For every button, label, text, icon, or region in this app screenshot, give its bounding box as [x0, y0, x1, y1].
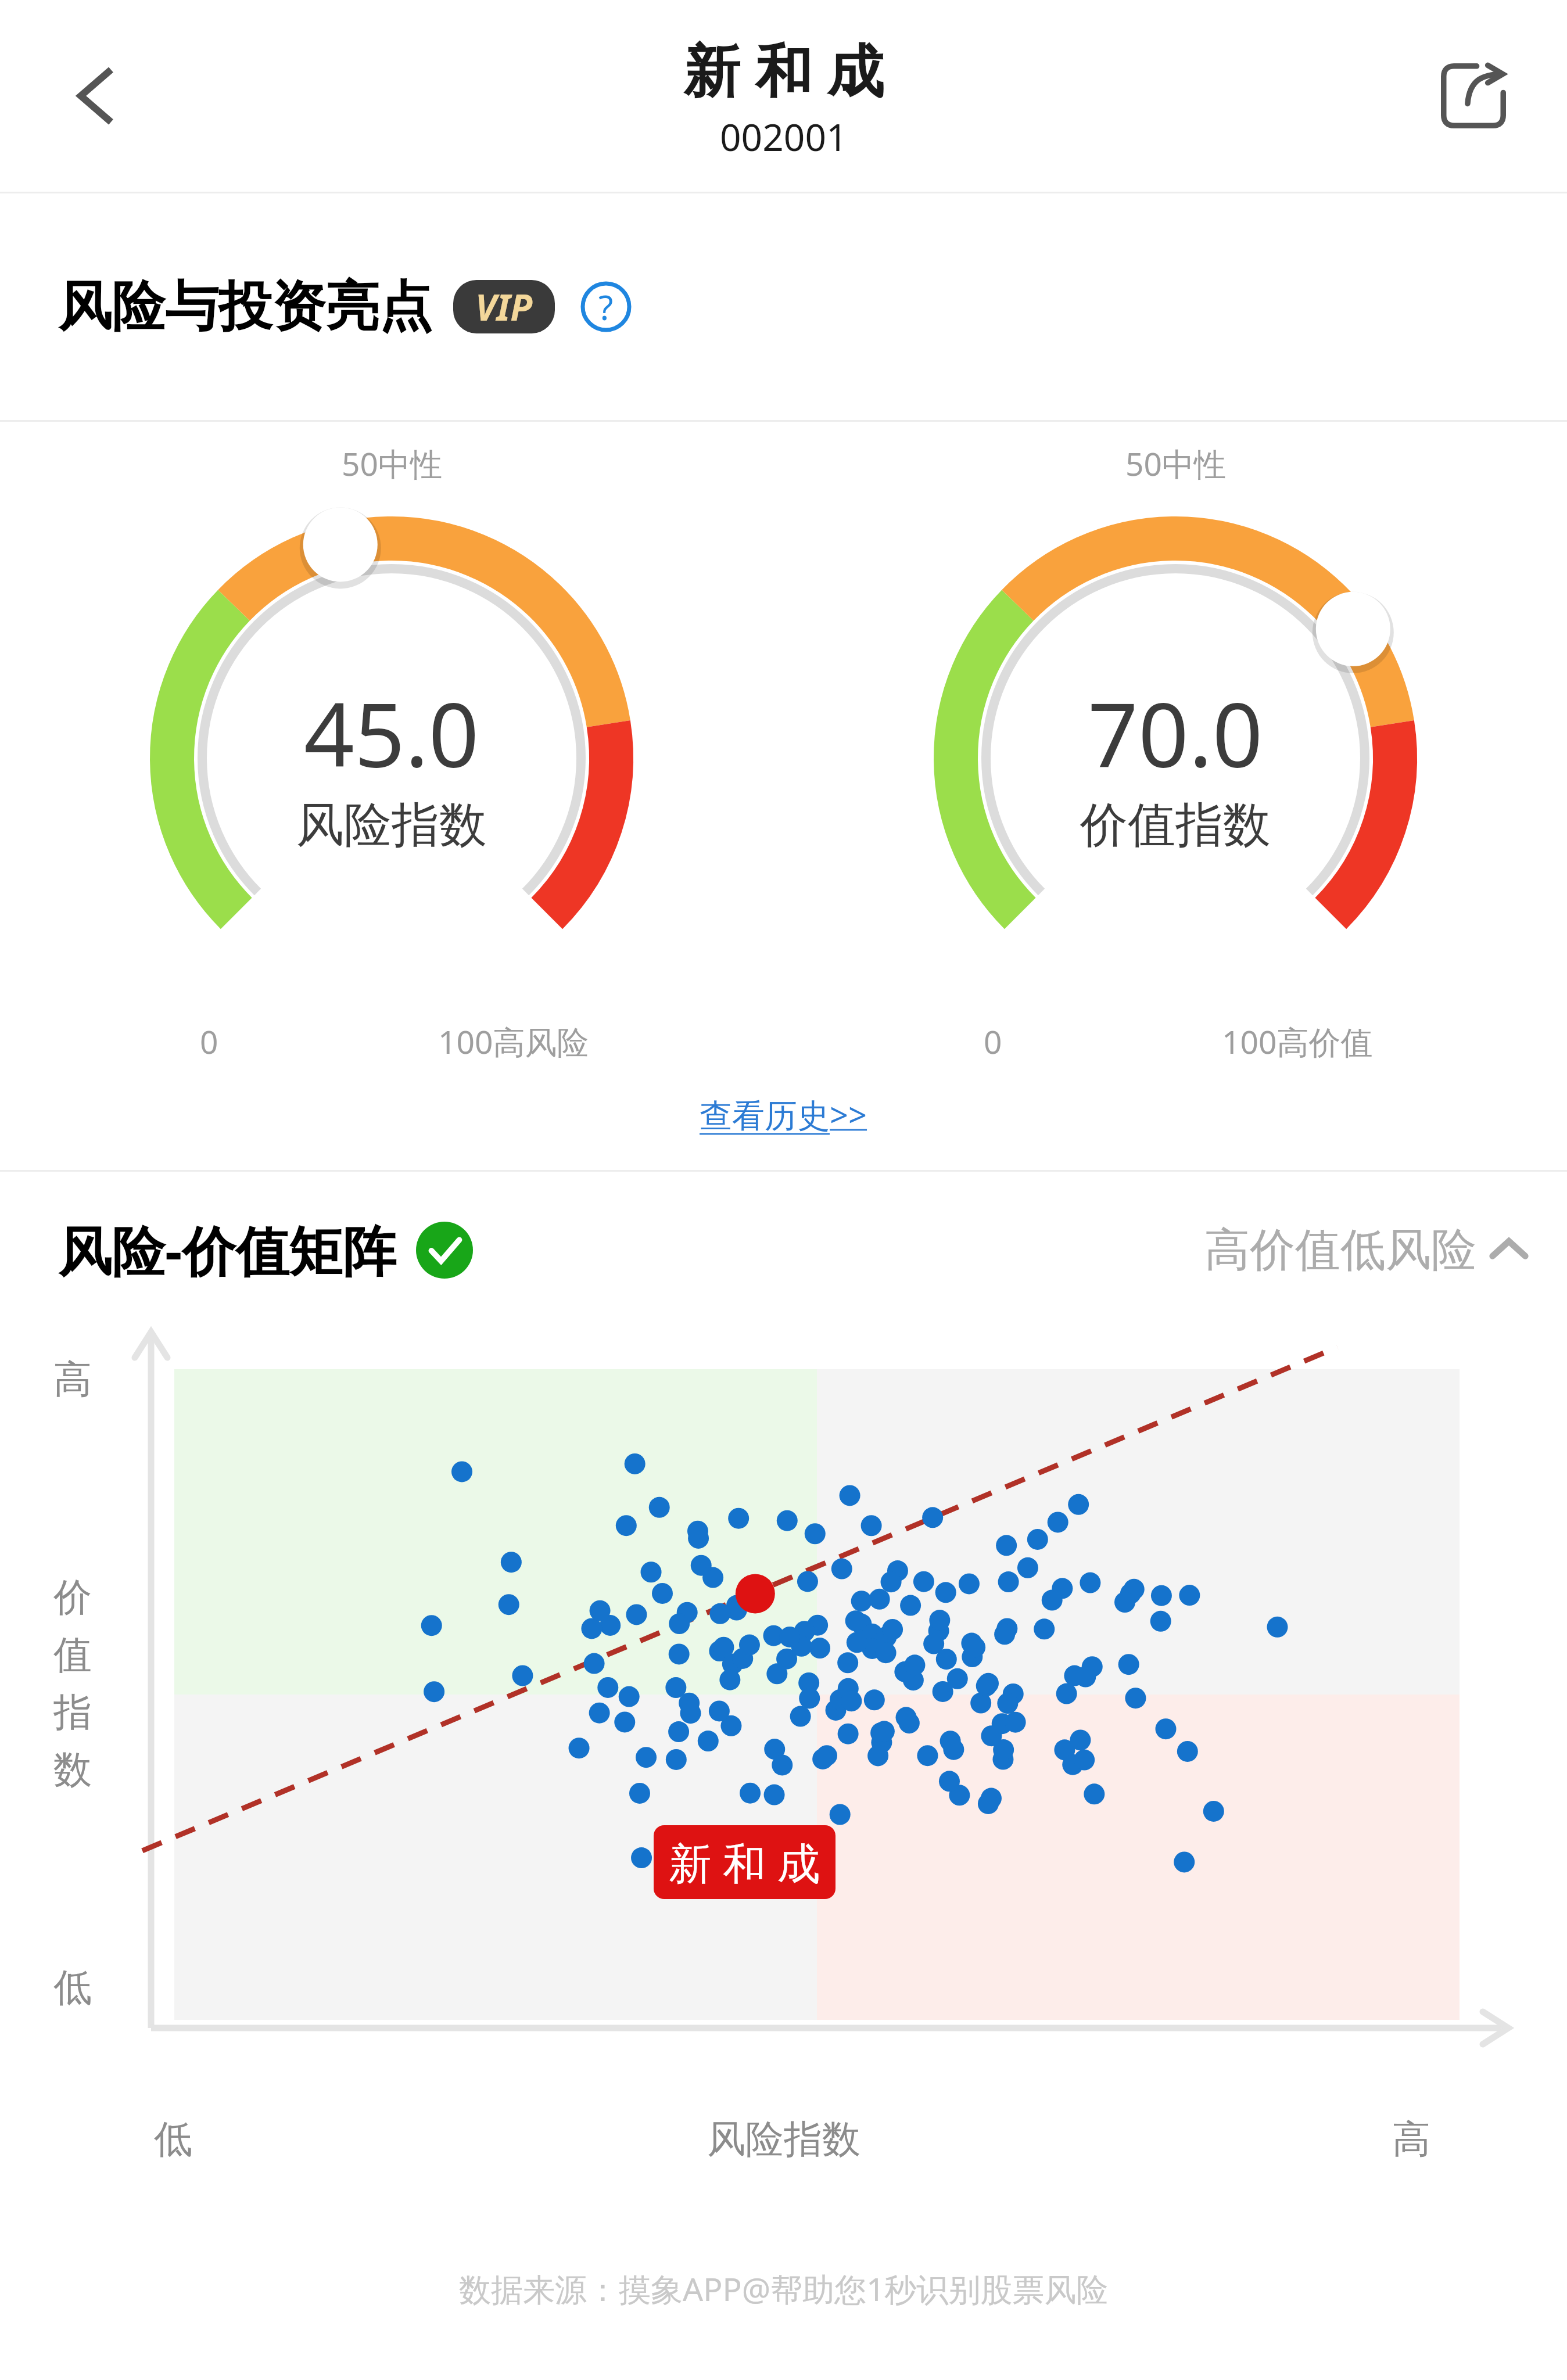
staticText: 高: [1392, 2115, 1430, 2163]
staticText: 新 和 成: [669, 1833, 820, 1891]
staticText: 指: [53, 1688, 92, 1736]
staticText: 高: [53, 1355, 92, 1403]
staticText: 0: [984, 1020, 1002, 1063]
staticText: ?: [598, 284, 614, 330]
staticText: 新 和 成: [683, 30, 884, 108]
staticText: VIP: [475, 282, 533, 331]
button[interactable]: Share: [1424, 46, 1523, 145]
button[interactable]: 新 和 成: [654, 1825, 836, 1899]
staticText: 70.0: [1088, 673, 1263, 793]
button[interactable]: 查看历史>>: [686, 1086, 881, 1142]
button[interactable]: Back: [45, 46, 144, 145]
button[interactable]: 高价值低风险: [1200, 1217, 1532, 1283]
staticText: 002001: [720, 112, 848, 162]
staticText: 查看历史>>: [700, 1092, 867, 1136]
staticText: 50中性: [1125, 441, 1226, 485]
staticText: 风险-价值矩阵: [58, 1214, 396, 1287]
staticText: 数据来源：摸象APP@帮助您1秒识别股票风险: [459, 2267, 1109, 2310]
staticText: 值: [53, 1631, 92, 1679]
staticText: 数: [53, 1746, 92, 1794]
staticText: 风险与投资亮点: [58, 273, 432, 340]
staticText: 高价值低风险: [1204, 1222, 1476, 1279]
staticText: 价: [53, 1573, 92, 1621]
staticText: 风险指数: [296, 795, 487, 855]
staticText: 低: [154, 2115, 192, 2163]
staticText: 价值指数: [1080, 795, 1271, 855]
button[interactable]: VIP: [453, 280, 555, 333]
staticText: 100高风险: [438, 1020, 589, 1063]
staticText: 100高价值: [1222, 1020, 1373, 1063]
staticText: 50中性: [342, 441, 442, 485]
staticText: 风险指数: [707, 2115, 860, 2163]
staticText: 45.0: [304, 673, 479, 793]
button[interactable]: Help: [571, 272, 641, 342]
staticText: 0: [200, 1020, 218, 1063]
staticText: 低: [53, 1963, 92, 2012]
